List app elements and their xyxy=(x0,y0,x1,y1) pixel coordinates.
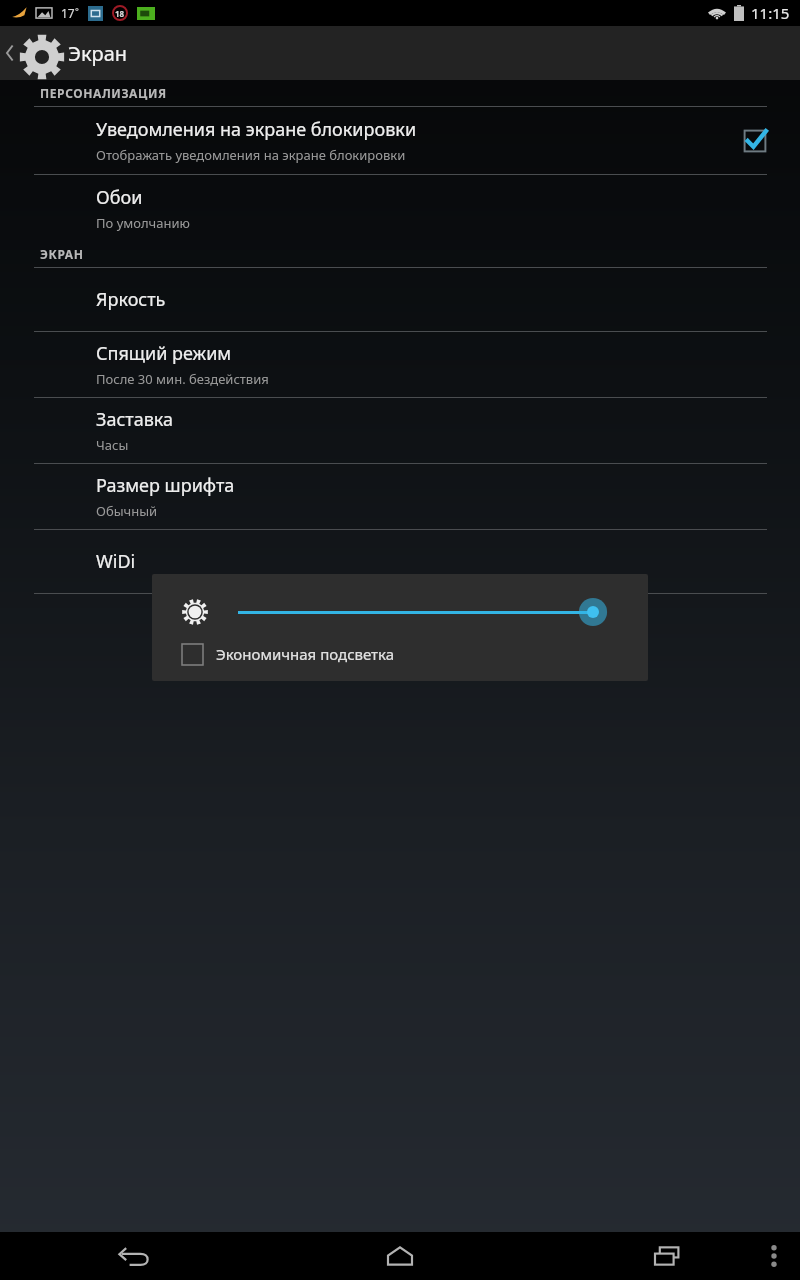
staticText: Часы xyxy=(96,436,129,454)
staticText: ПЕРСОНАЛИЗАЦИЯ xyxy=(40,85,167,101)
staticText: Уведомления на экране блокировки xyxy=(96,117,417,142)
staticText: После 30 мин. бездействия xyxy=(96,370,269,388)
staticText: 11:15 xyxy=(751,3,790,23)
staticText: Экран xyxy=(68,40,128,67)
staticText: Спящий режим xyxy=(96,341,232,366)
staticText: ° xyxy=(75,5,79,17)
staticText: Обычный xyxy=(96,502,158,520)
button[interactable]: More options xyxy=(748,1232,800,1280)
button[interactable]: Recent apps xyxy=(533,1232,800,1280)
button[interactable]: Яркость xyxy=(228,596,624,628)
button[interactable]: Back xyxy=(0,1232,266,1280)
button[interactable]: Спящий режим xyxy=(0,332,800,397)
button[interactable]: Заставка xyxy=(0,398,800,463)
staticText: 18 xyxy=(115,8,125,19)
staticText: Заставка xyxy=(96,407,174,432)
button[interactable]: Уведомления на экране блокировки xyxy=(738,124,772,158)
staticText: Размер шрифта xyxy=(96,473,235,498)
staticText: Отображать уведомления на экране блокиро… xyxy=(96,146,406,164)
button[interactable]: Обои xyxy=(0,175,800,241)
button[interactable]: Размер шрифта xyxy=(0,464,800,529)
staticText: Экономичная подсветка xyxy=(216,644,395,664)
staticText: 17 xyxy=(61,5,75,21)
button[interactable]: Экономичная подсветка xyxy=(174,634,395,674)
button[interactable]: Home xyxy=(266,1232,533,1280)
button[interactable]: Back to Settings xyxy=(0,26,74,80)
staticText: Обои xyxy=(96,185,143,210)
staticText: Яркость xyxy=(96,287,166,312)
button[interactable]: Уведомления на экране блокировки xyxy=(0,107,800,174)
staticText: WiDi xyxy=(96,549,136,574)
button[interactable]: Яркость xyxy=(0,268,800,331)
button[interactable]: WiDi xyxy=(0,530,800,593)
staticText: По умолчанию xyxy=(96,214,190,232)
staticText: ЭКРАН xyxy=(40,246,84,262)
